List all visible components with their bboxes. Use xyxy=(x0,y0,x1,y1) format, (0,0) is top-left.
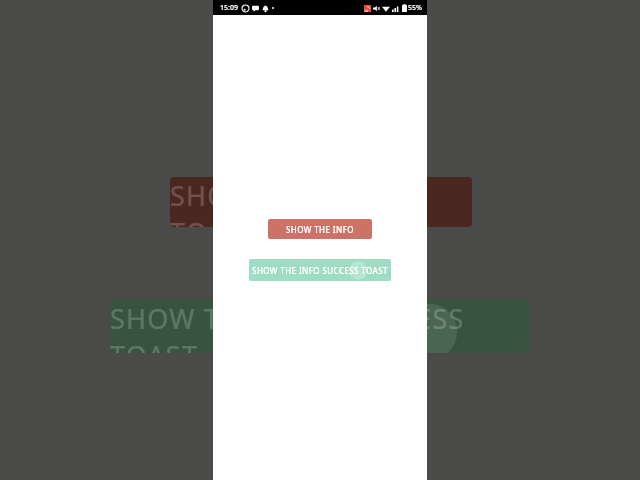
button[interactable]: SHOW THE INFO TOAST xyxy=(268,219,372,239)
staticText: SHOW THE INFO SUCCESS TOAST xyxy=(110,300,530,353)
staticText: SHOW THE INFO TOAST xyxy=(274,224,366,235)
staticText: SHOW THE INFO SUCCESS TOAST xyxy=(252,265,388,276)
staticText: SHOW THE INFO TOAST xyxy=(170,177,472,227)
staticText: 55% xyxy=(408,3,422,13)
button[interactable]: SHOW THE INFO SUCCESS TOAST xyxy=(249,259,391,281)
staticText: 15:09 xyxy=(220,3,238,13)
